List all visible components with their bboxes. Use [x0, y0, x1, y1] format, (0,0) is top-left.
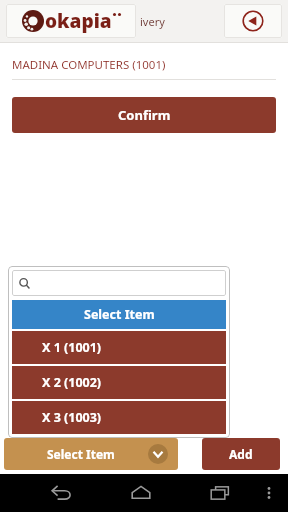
staticText: X 3 (1003) — [42, 409, 102, 426]
staticText: Add — [229, 446, 253, 462]
button[interactable]: Search items — [12, 270, 226, 296]
staticText: Select Item — [47, 446, 115, 462]
button[interactable]: X 2 (1002) — [12, 366, 226, 399]
button[interactable]: Back — [224, 4, 282, 38]
staticText: MADINA COMPUTERS (1001) — [12, 57, 166, 73]
staticText: Confirm — [118, 106, 171, 124]
staticText: ivery — [140, 14, 165, 29]
button[interactable]: X 3 (1003) — [12, 401, 226, 434]
button[interactable]: More options — [256, 480, 282, 506]
button[interactable]: X 1 (1001) — [12, 331, 226, 364]
button[interactable]: Confirm — [12, 97, 276, 133]
button[interactable]: Select Item — [12, 300, 226, 329]
button[interactable]: Add — [202, 438, 280, 470]
button[interactable]: Back — [44, 475, 80, 511]
button[interactable]: Okapia logo — [6, 4, 136, 38]
button[interactable]: Recents — [202, 475, 238, 511]
button[interactable]: Select Item — [4, 438, 178, 470]
staticText: okapia — [45, 8, 112, 34]
button[interactable]: Home — [123, 475, 159, 511]
staticText: Select Item — [84, 306, 155, 323]
staticText: X 1 (1001) — [42, 339, 102, 356]
staticText: X 2 (1002) — [42, 374, 102, 391]
